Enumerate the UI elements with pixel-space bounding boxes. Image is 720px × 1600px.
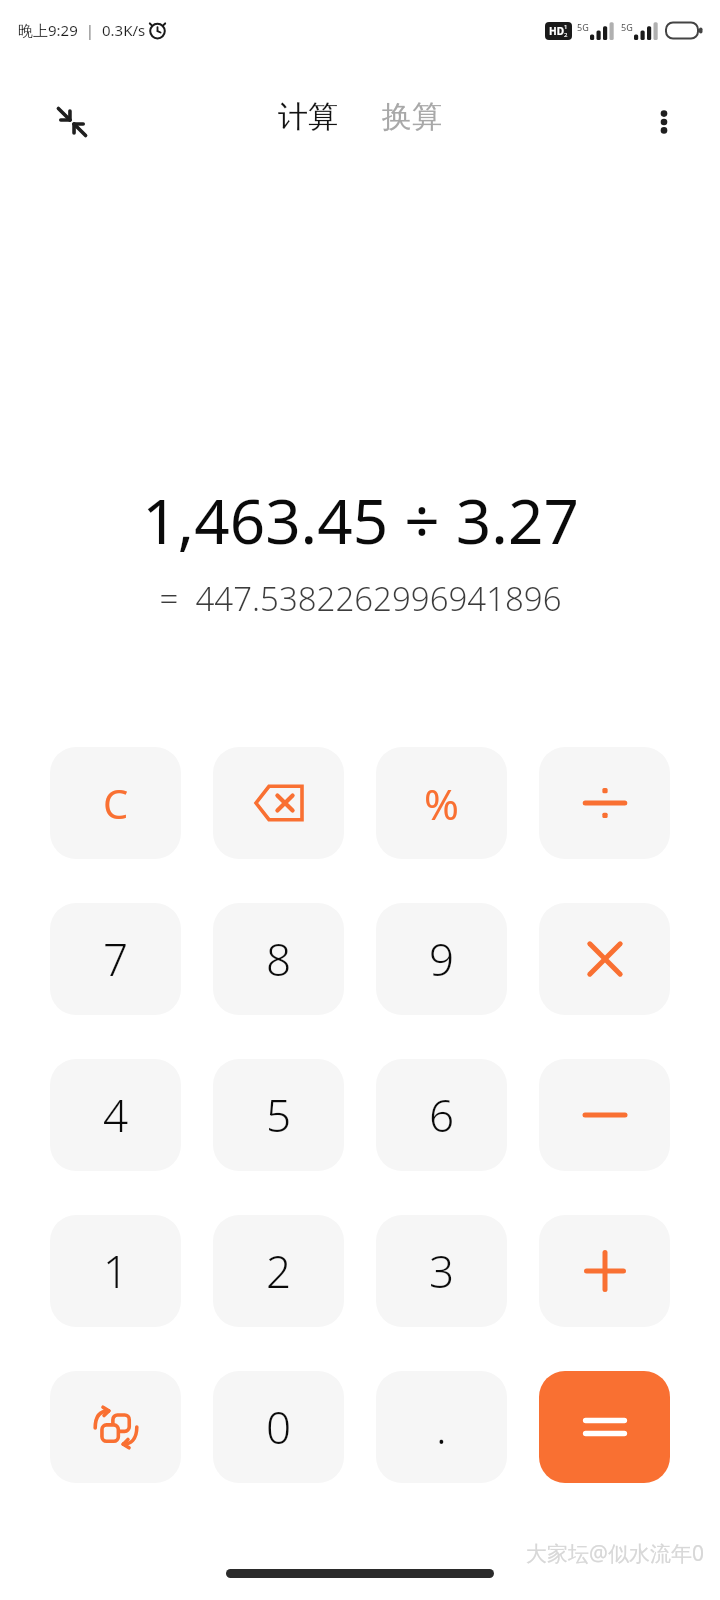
- button[interactable]: 6: [376, 1059, 507, 1171]
- button[interactable]: .: [376, 1371, 507, 1483]
- staticText: 大家坛@似水流年0: [526, 1539, 704, 1568]
- button[interactable]: 1: [50, 1215, 181, 1327]
- staticText: 5: [266, 1085, 292, 1145]
- staticText: 4: [103, 1085, 129, 1145]
- button[interactable]: C: [50, 747, 181, 859]
- button[interactable]: [539, 747, 670, 859]
- button[interactable]: 4: [50, 1059, 181, 1171]
- staticText: 0: [266, 1397, 292, 1457]
- button[interactable]: Backspace: [213, 747, 344, 859]
- staticText: 1: [564, 23, 568, 31]
- staticText: 1,463.45 ÷ 3.27: [142, 478, 579, 562]
- button[interactable]: 7: [50, 903, 181, 1015]
- button[interactable]: [539, 1059, 670, 1171]
- button[interactable]: [539, 1371, 670, 1483]
- staticText: 9: [429, 929, 455, 989]
- button[interactable]: %: [376, 747, 507, 859]
- button[interactable]: Convert: [50, 1371, 181, 1483]
- staticText: .: [436, 1397, 447, 1457]
- button[interactable]: Collapse: [40, 90, 104, 154]
- staticText: 2: [266, 1241, 292, 1301]
- button[interactable]: [539, 1215, 670, 1327]
- button[interactable]: 8: [213, 903, 344, 1015]
- button[interactable]: 计算: [270, 92, 346, 142]
- button[interactable]: 3: [376, 1215, 507, 1327]
- button[interactable]: 换算: [374, 92, 450, 142]
- staticText: 2: [564, 31, 568, 39]
- staticText: 5G: [577, 21, 589, 33]
- button[interactable]: 5: [213, 1059, 344, 1171]
- button[interactable]: 9: [376, 903, 507, 1015]
- staticText: C: [103, 776, 129, 830]
- staticText: 7: [103, 929, 129, 989]
- button[interactable]: More options: [632, 90, 696, 154]
- staticText: 6: [429, 1085, 455, 1145]
- staticText: 晚上9:29: [18, 20, 78, 40]
- staticText: 5G: [621, 21, 633, 33]
- staticText: HD: [549, 24, 564, 38]
- staticText: = 447.5382262996941896: [159, 576, 562, 621]
- staticText: 计算: [278, 98, 338, 136]
- button[interactable]: 0: [213, 1371, 344, 1483]
- staticText: 3: [429, 1241, 455, 1301]
- button[interactable]: 2: [213, 1215, 344, 1327]
- staticText: 1: [103, 1241, 129, 1301]
- staticText: 0.3K/s: [102, 20, 146, 40]
- button[interactable]: [539, 903, 670, 1015]
- staticText: 换算: [382, 98, 442, 136]
- staticText: %: [424, 775, 459, 832]
- staticText: 8: [266, 929, 292, 989]
- staticText: |: [78, 20, 102, 40]
